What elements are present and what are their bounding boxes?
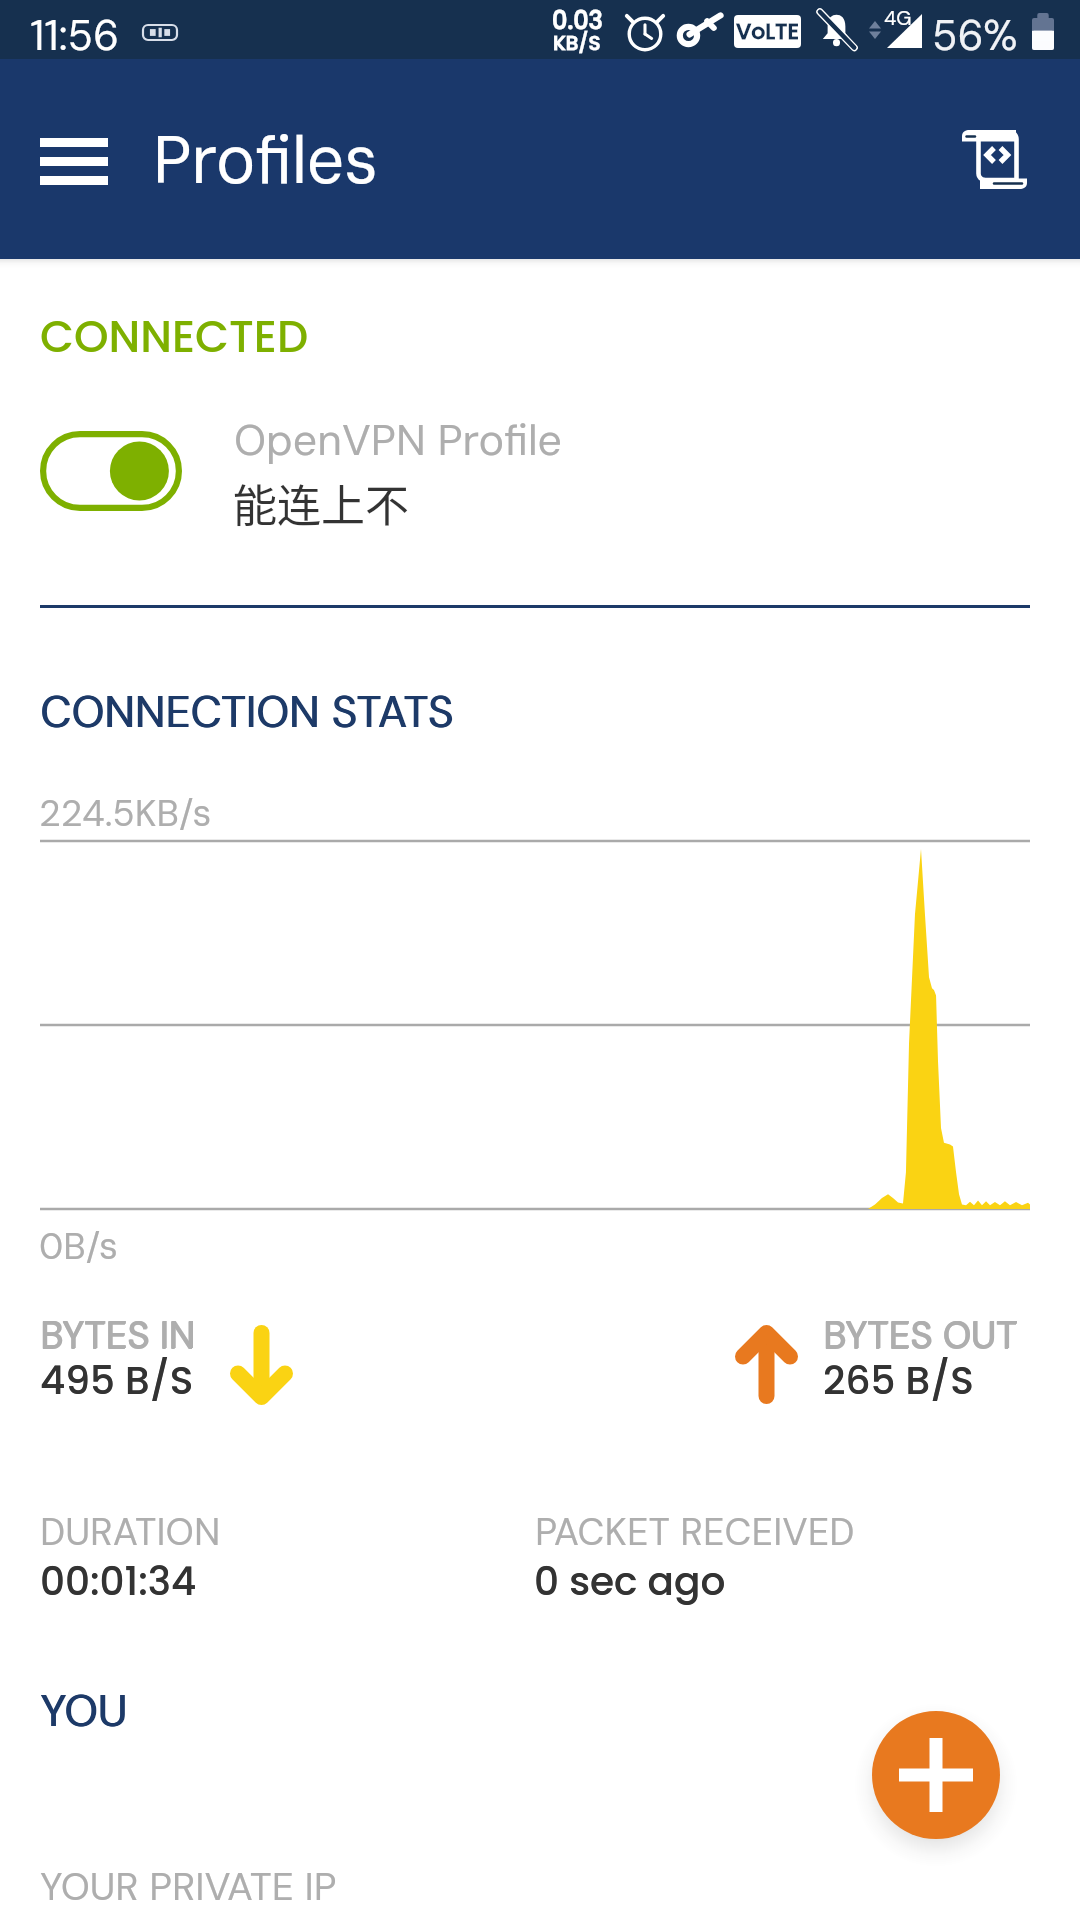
staticText: 56% xyxy=(932,8,1018,63)
staticText: YOU xyxy=(40,1681,127,1740)
staticText: 495 B/S xyxy=(40,1353,194,1408)
staticText: 00:01:34 xyxy=(40,1554,197,1609)
staticText: CONNECTION STATS xyxy=(40,683,454,740)
staticText: BYTES IN xyxy=(40,1311,195,1360)
staticText: YOU xyxy=(41,1681,128,1740)
staticText: BYTES IN xyxy=(41,1310,196,1359)
staticText: YOUR PRIVATE IP xyxy=(40,1861,337,1912)
staticText: 0 sec ago xyxy=(534,1554,726,1609)
staticText: YOU xyxy=(40,1681,127,1740)
staticText: 0 sec ago xyxy=(534,1554,726,1609)
staticText: 00:01:34 xyxy=(40,1554,197,1609)
staticText: PACKET RECEIVED xyxy=(535,1507,855,1556)
staticText: VoLTE xyxy=(736,16,800,47)
staticText: 能连上不 xyxy=(233,471,409,535)
staticText: 4G xyxy=(884,5,912,31)
button[interactable]: Disconnect VPN xyxy=(40,431,182,511)
staticText: BYTES IN xyxy=(40,1310,195,1359)
staticText: BYTES OUT xyxy=(823,1311,1018,1360)
staticText: 0.03 xyxy=(552,4,603,38)
staticText: BYTES OUT xyxy=(823,1310,1018,1359)
staticText: 11:56 xyxy=(30,8,120,63)
staticText: 0B/s xyxy=(39,1222,118,1270)
staticText: 224.5KB/s xyxy=(39,789,212,837)
staticText: 265 B/S xyxy=(823,1353,974,1408)
staticText: BYTES OUT xyxy=(824,1310,1019,1359)
button[interactable]: Open navigation menu xyxy=(40,138,108,185)
staticText: Profiles xyxy=(153,118,378,204)
staticText: OpenVPN Profile xyxy=(234,412,562,468)
staticText: CONNECTION STATS xyxy=(41,683,455,740)
staticText: CONNECTED xyxy=(40,306,309,368)
staticText: DURATION xyxy=(40,1507,221,1556)
staticText: KB/S xyxy=(553,29,601,57)
staticText: CONNECTION STATS xyxy=(40,683,454,740)
staticText: 495 B/S xyxy=(40,1353,194,1408)
button[interactable]: OpenVPN Profile xyxy=(210,398,1030,528)
button[interactable]: Import profile from file xyxy=(945,114,1044,207)
staticText: 265 B/S xyxy=(823,1353,974,1408)
button[interactable]: Add profile xyxy=(872,1711,1000,1839)
